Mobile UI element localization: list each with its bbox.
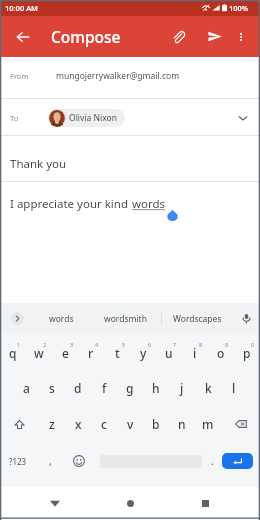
staticText: 8 — [199, 341, 203, 348]
button[interactable]: e — [52, 338, 78, 368]
staticText: Wordscapes — [173, 313, 222, 325]
staticText: h — [152, 380, 160, 396]
button[interactable]: w — [26, 338, 52, 368]
staticText: m — [202, 416, 214, 432]
button[interactable]: i — [182, 338, 208, 368]
staticText: ?123 — [9, 456, 27, 467]
staticText: j — [180, 380, 184, 396]
staticText: z — [49, 416, 55, 432]
staticText: I appreciate your kind — [10, 196, 132, 212]
staticText: o — [217, 345, 225, 361]
button[interactable]: More suggestions — [0, 303, 34, 334]
staticText: v — [127, 416, 134, 432]
button[interactable]: Emoji — [64, 446, 94, 476]
staticText: 9 — [225, 341, 229, 348]
button[interactable]: Recent apps — [185, 487, 225, 520]
button[interactable]: c — [91, 409, 117, 439]
staticText: 0 — [251, 341, 255, 348]
button[interactable]: l — [221, 373, 247, 403]
button[interactable]: . — [202, 446, 222, 476]
button[interactable]: x — [65, 409, 91, 439]
button[interactable]: h — [143, 373, 169, 403]
button[interactable]: Shift — [0, 409, 39, 439]
button[interactable]: Hide keyboard — [35, 487, 75, 520]
button[interactable]: q — [0, 338, 26, 368]
button[interactable]: , — [36, 446, 64, 476]
staticText: Compose — [51, 26, 121, 47]
staticText: mungojerrywalker@gmail.com — [56, 70, 180, 82]
staticText: r — [88, 345, 94, 361]
staticText: 7 — [173, 341, 177, 348]
button[interactable]: j — [169, 373, 195, 403]
button[interactable]: Attach file — [164, 16, 192, 57]
button[interactable]: y — [130, 338, 156, 368]
button[interactable]: ?123 — [0, 446, 36, 476]
staticText: u — [165, 345, 173, 361]
staticText: 1 — [17, 341, 21, 348]
button[interactable]: b — [143, 409, 169, 439]
staticText: k — [205, 380, 212, 396]
button[interactable]: s — [39, 373, 65, 403]
staticText: 4 — [95, 341, 99, 348]
staticText: g — [126, 380, 134, 396]
staticText: d — [74, 380, 82, 396]
button[interactable]: n — [169, 409, 195, 439]
button[interactable]: z — [39, 409, 65, 439]
staticText: 10:00 AM — [5, 3, 38, 13]
button[interactable]: Voice input — [232, 303, 260, 334]
button[interactable]: o — [208, 338, 234, 368]
button[interactable]: m — [195, 409, 221, 439]
staticText: words — [49, 313, 74, 325]
staticText: wordsmith — [104, 313, 147, 325]
staticText: a — [23, 380, 30, 396]
button[interactable]: More options — [229, 16, 253, 57]
staticText: words — [132, 196, 166, 212]
staticText: w — [34, 345, 44, 361]
staticText: f — [102, 380, 107, 396]
button[interactable]: Send — [200, 16, 230, 57]
staticText: q — [9, 345, 17, 361]
button[interactable]: a — [13, 373, 39, 403]
button[interactable]: t — [104, 338, 130, 368]
button[interactable]: Backspace — [221, 409, 260, 439]
staticText: 3 — [70, 341, 74, 348]
staticText: t — [115, 345, 120, 361]
staticText: . — [211, 454, 214, 468]
staticText: x — [75, 416, 82, 432]
staticText: l — [232, 380, 236, 396]
staticText: 5 — [122, 341, 126, 348]
button[interactable]: f — [91, 373, 117, 403]
staticText: 2 — [43, 341, 47, 348]
button[interactable]: words — [34, 303, 89, 334]
staticText: , — [49, 454, 52, 468]
button[interactable]: p — [234, 338, 260, 368]
staticText: c — [101, 416, 107, 432]
staticText: 100% — [229, 3, 249, 13]
button[interactable]: Wordscapes — [162, 303, 232, 334]
staticText: Thank you — [10, 156, 67, 172]
staticText: e — [62, 345, 69, 361]
staticText: 6 — [148, 341, 152, 348]
button[interactable]: r — [78, 338, 104, 368]
button[interactable]: d — [65, 373, 91, 403]
button[interactable]: Show more recipients — [232, 107, 254, 129]
staticText: i — [193, 345, 197, 361]
staticText: b — [152, 416, 160, 432]
button[interactable]: v — [117, 409, 143, 439]
staticText: n — [178, 416, 186, 432]
button[interactable]: Home — [110, 487, 150, 520]
button[interactable]: Olivia Nixon — [48, 109, 125, 127]
button[interactable]: u — [156, 338, 182, 368]
button[interactable]: g — [117, 373, 143, 403]
staticText: Olivia Nixon — [69, 112, 117, 124]
button[interactable]: Enter — [222, 453, 253, 469]
button[interactable]: k — [195, 373, 221, 403]
staticText: y — [140, 345, 147, 361]
button[interactable]: wordsmith — [89, 303, 161, 334]
button[interactable]: Back — [10, 16, 36, 57]
staticText: From — [10, 71, 29, 81]
staticText: To — [10, 113, 19, 123]
staticText: p — [243, 345, 251, 361]
staticText: s — [49, 380, 55, 396]
